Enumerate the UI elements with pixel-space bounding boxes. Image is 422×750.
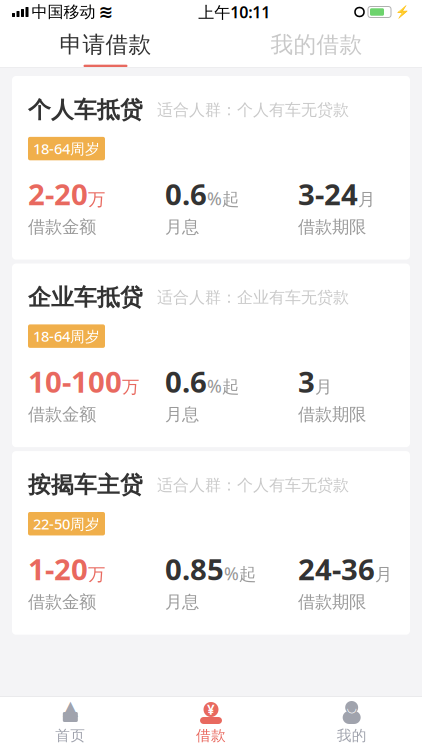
button[interactable]: ¥ [141,694,281,750]
staticText: 我的借款 [270,31,362,59]
staticText: 万 [88,564,105,585]
staticText: 月 [315,376,332,398]
staticText: ¥ [207,701,215,718]
staticText: 3 [298,362,315,401]
staticText: 适合人群：个人有车无贷款 [157,100,349,120]
staticText: 万 [88,189,105,210]
staticText: 0.6 [165,174,207,213]
staticText: 月息 [165,591,199,613]
staticText: 18-64周岁 [33,326,100,346]
staticText: 3-24 [298,174,358,213]
staticText: 按揭车主贷 [28,471,143,499]
staticText: 我的 [337,726,367,744]
staticText: 月 [358,189,375,210]
staticText: 中国移动 [31,2,95,22]
button[interactable]: 个人车抵贷 [12,76,410,260]
staticText: 0.6 [165,362,207,401]
staticText: ◡ [347,701,356,714]
staticText: %起 [224,562,256,585]
staticText: 借款 [196,726,226,744]
button[interactable]: 申请借款 [0,25,211,67]
staticText: 0.85 [165,549,224,588]
staticText: 月息 [165,216,199,238]
button[interactable]: 按揭车主贷 [12,451,410,635]
staticText: 借款期限 [298,591,366,613]
staticText: 企业车抵贷 [28,284,143,311]
button[interactable]: ◡ [281,694,422,750]
staticText: 申请借款 [59,31,151,59]
staticText: 个人车抵贷 [28,96,143,124]
staticText: %起 [207,187,239,210]
staticText: 万 [122,376,139,398]
staticText: ▲ [63,696,78,719]
staticText: 24-36 [298,549,375,588]
staticText: 借款金额 [28,216,96,238]
staticText: 月 [375,564,392,585]
staticText: 1-20 [28,549,88,588]
staticText: 月息 [165,404,199,425]
staticText: 10-100 [28,362,122,401]
staticText: 适合人群：个人有车无贷款 [157,475,349,495]
staticText: 首页 [55,726,85,744]
staticText: 借款金额 [28,591,96,613]
button[interactable]: 我的借款 [211,25,422,67]
staticText: 2-20 [28,174,88,213]
staticText: ⚡ [395,5,410,19]
staticText: 借款期限 [298,216,366,238]
staticText: 适合人群：企业有车无贷款 [157,288,349,307]
staticText: 18-64周岁 [33,139,100,158]
staticText: 上午10:11 [198,1,270,23]
button[interactable]: 企业车抵贷 [12,264,410,447]
staticText: 借款期限 [298,404,366,425]
staticText: 22-50周岁 [33,514,100,533]
button[interactable]: ▲ [0,694,141,750]
staticText: %起 [207,374,239,397]
staticText: ≋ [98,2,113,22]
staticText: 借款金额 [28,404,96,425]
